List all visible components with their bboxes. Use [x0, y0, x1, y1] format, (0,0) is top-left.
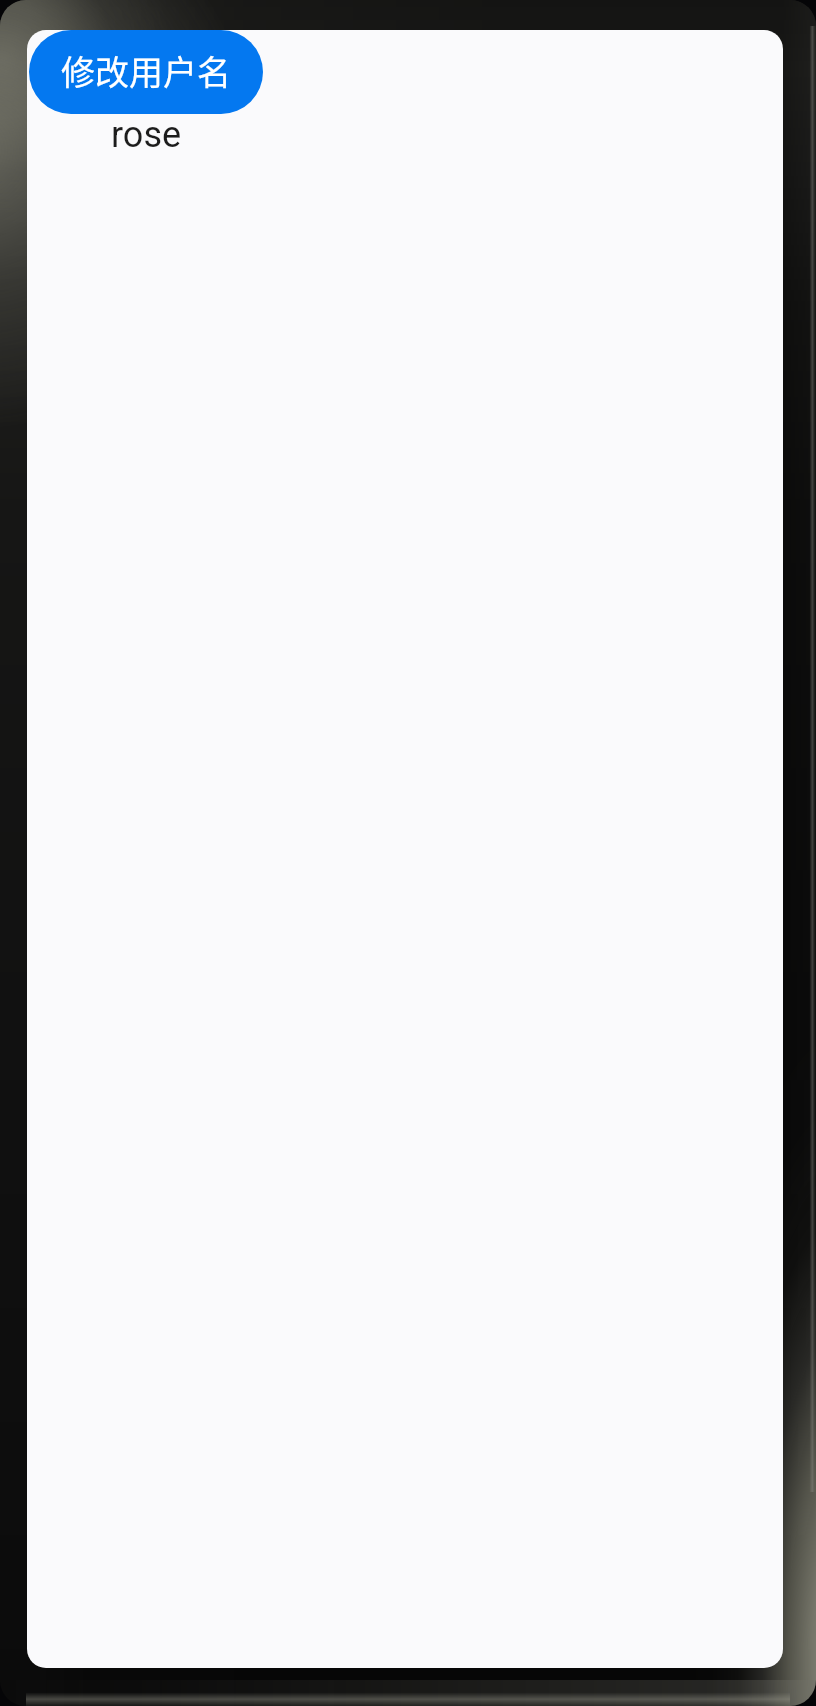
- button[interactable]: 修改用户名: [29, 30, 263, 114]
- staticText: rose: [111, 114, 182, 156]
- staticText: 修改用户名: [61, 46, 231, 95]
